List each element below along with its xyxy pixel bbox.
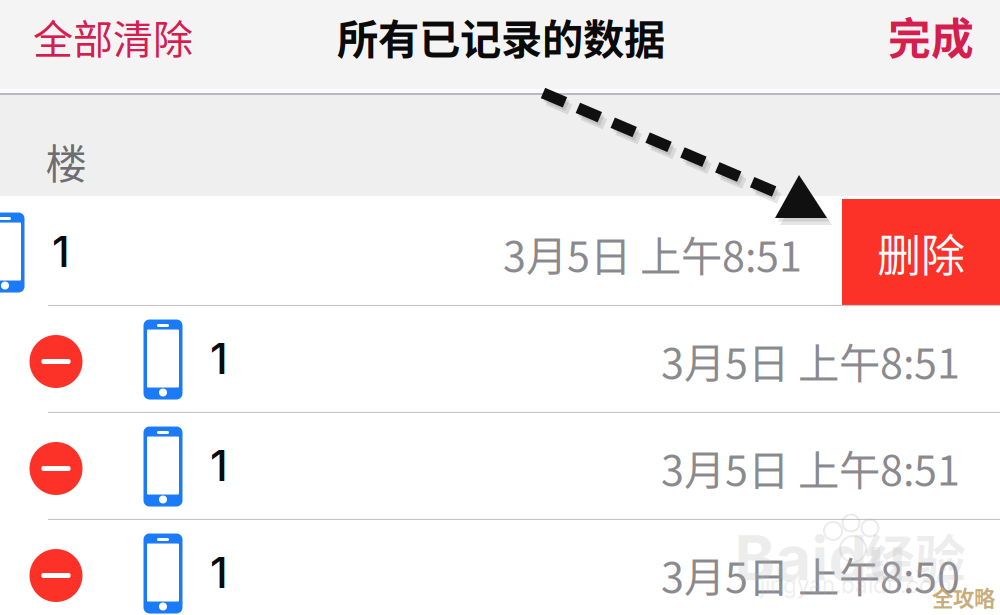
staticText: 全攻略: [932, 582, 995, 612]
staticText: 3月5日 上午8:51: [661, 438, 960, 497]
button[interactable]: 删除: [842, 199, 1000, 306]
staticText: 删除: [877, 221, 965, 284]
staticText: 完成: [888, 5, 974, 67]
staticText: 1: [210, 440, 228, 491]
button[interactable]: 1: [0, 306, 1000, 413]
staticText: 经验: [864, 519, 966, 593]
button[interactable]: 1: [0, 520, 1000, 615]
staticText: 楼: [45, 131, 86, 191]
staticText: jingyan.baidu.com: [760, 571, 952, 599]
staticText: 所有已记录的数据: [337, 7, 665, 66]
button[interactable]: 全部清除: [33, 0, 233, 83]
button[interactable]: 1: [0, 413, 1000, 520]
button[interactable]: 完成: [854, 0, 974, 82]
staticText: 全部清除: [33, 7, 193, 65]
staticText: 1: [52, 226, 70, 277]
staticText: Baidu: [734, 521, 905, 595]
staticText: 1: [210, 547, 228, 598]
staticText: 3月5日 上午8:51: [503, 224, 802, 283]
staticText: 1: [210, 333, 228, 384]
staticText: 3月5日 上午8:50: [661, 545, 960, 604]
staticText: 3月5日 上午8:51: [661, 331, 960, 390]
